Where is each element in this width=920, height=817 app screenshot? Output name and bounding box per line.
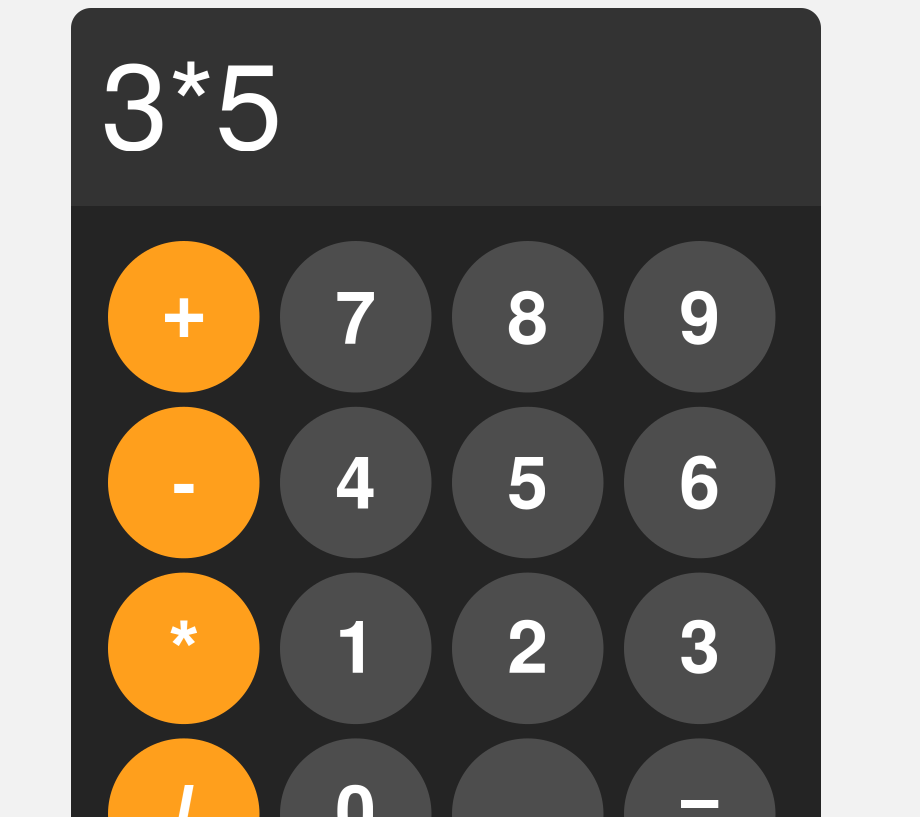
button[interactable]: Add	[108, 241, 259, 392]
staticText: *	[170, 605, 197, 682]
staticText: 1	[335, 590, 376, 695]
staticText: +	[162, 274, 206, 359]
button[interactable]: 1	[280, 573, 431, 724]
staticText: 3	[679, 590, 720, 695]
button[interactable]: 6	[624, 407, 775, 558]
button[interactable]: Decimal point	[452, 738, 603, 817]
button[interactable]: 0	[280, 738, 431, 817]
button[interactable]: Divide	[108, 738, 259, 817]
staticText: -	[171, 439, 196, 524]
button[interactable]: 8	[452, 241, 603, 392]
button[interactable]: 7	[280, 241, 431, 392]
staticText: 9	[679, 261, 720, 366]
staticText: =	[678, 771, 722, 817]
staticText: 5	[507, 426, 548, 531]
button[interactable]: 2	[452, 573, 603, 724]
staticText: /	[173, 771, 194, 817]
staticText: 4	[335, 426, 376, 531]
button[interactable]: Equals	[624, 738, 775, 817]
staticText: 7	[335, 261, 376, 366]
button[interactable]: 3	[624, 573, 775, 724]
staticText: 0	[335, 755, 376, 817]
staticText: 3*5	[101, 10, 282, 184]
staticText: 2	[507, 590, 548, 695]
button[interactable]: Multiply	[108, 573, 259, 724]
button[interactable]: 9	[624, 241, 775, 392]
staticText: 6	[679, 426, 720, 531]
staticText: 8	[507, 261, 548, 366]
button[interactable]: 5	[452, 407, 603, 558]
button[interactable]: Subtract	[108, 407, 259, 558]
button[interactable]: 4	[280, 407, 431, 558]
